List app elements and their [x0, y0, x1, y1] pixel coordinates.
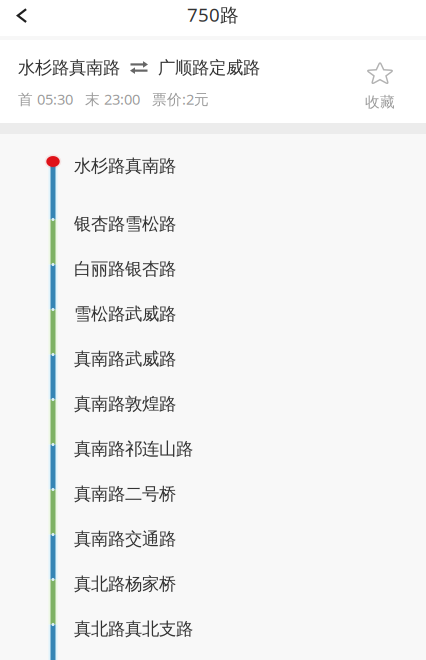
staticText: 票价:2元: [152, 89, 209, 109]
button[interactable]: Back: [0, 0, 44, 36]
button[interactable]: 白丽路银杏路: [0, 246, 426, 291]
staticText: 真南路武威路: [74, 348, 176, 370]
staticText: 首 05:30: [18, 89, 73, 109]
staticText: 真北路真北支路: [74, 618, 193, 640]
button[interactable]: 真南路交通路: [0, 516, 426, 561]
staticText: 白丽路银杏路: [74, 258, 176, 280]
staticText: 雪松路武威路: [74, 303, 176, 325]
button[interactable]: 真南路祁连山路: [0, 426, 426, 471]
staticText: 水杉路真南路: [74, 155, 176, 177]
staticText: 真南路敦煌路: [74, 393, 176, 415]
button[interactable]: 收藏: [350, 40, 410, 123]
button[interactable]: 水杉路真南路: [0, 143, 426, 188]
button[interactable]: 真南路敦煌路: [0, 381, 426, 426]
button[interactable]: 真南路二号桥: [0, 471, 426, 516]
staticText: 银杏路雪松路: [74, 213, 176, 235]
button[interactable]: 真北路梅川路: [0, 651, 426, 660]
staticText: 收藏: [365, 93, 395, 111]
staticText: 真北路杨家桥: [74, 573, 176, 595]
staticText: 水杉路真南路: [18, 57, 120, 78]
staticText: 真南路二号桥: [74, 483, 176, 505]
button[interactable]: 真北路杨家桥: [0, 561, 426, 606]
staticText: 末 23:00: [85, 89, 140, 109]
button[interactable]: 真南路武威路: [0, 336, 426, 381]
staticText: 真南路交通路: [74, 528, 176, 550]
staticText: 真南路祁连山路: [74, 438, 193, 460]
staticText: 750路: [187, 2, 239, 27]
button[interactable]: 真北路真北支路: [0, 606, 426, 651]
button[interactable]: 银杏路雪松路: [0, 201, 426, 246]
staticText: 广顺路定威路: [158, 57, 260, 78]
button[interactable]: 雪松路武威路: [0, 291, 426, 336]
